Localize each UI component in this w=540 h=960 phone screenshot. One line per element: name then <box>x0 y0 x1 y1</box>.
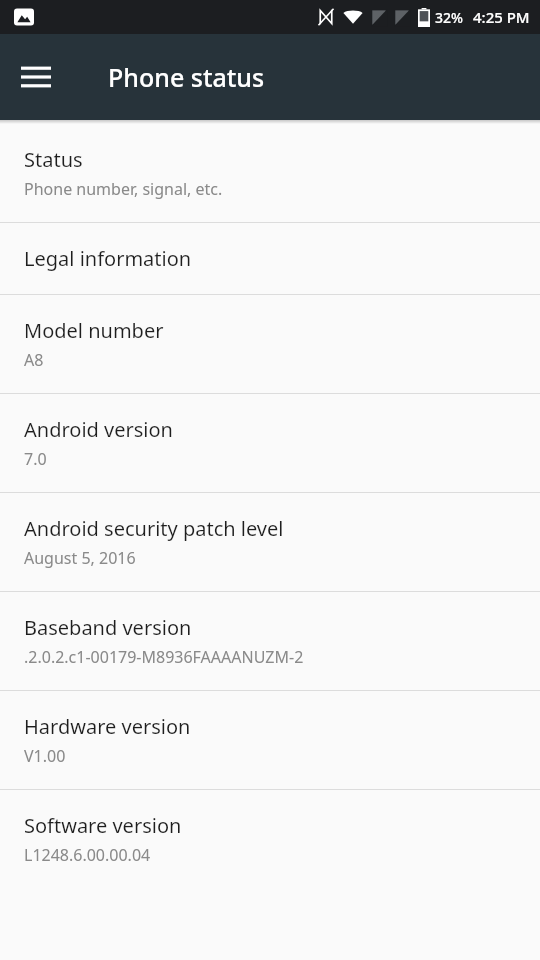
button[interactable]: Android security patch level <box>0 493 540 592</box>
button[interactable]: Model number <box>0 295 540 394</box>
staticText: Hardware version <box>24 713 191 740</box>
staticText: V1.00 <box>24 745 66 767</box>
button[interactable]: Legal information <box>0 223 540 295</box>
staticText: L1248.6.00.00.04 <box>24 844 151 866</box>
button[interactable]: Software version <box>0 790 540 888</box>
staticText: 7.0 <box>24 448 47 470</box>
staticText: Model number <box>24 317 164 344</box>
staticText: August 5, 2016 <box>24 547 136 569</box>
staticText: Android security patch level <box>24 515 284 542</box>
staticText: Legal information <box>24 245 192 272</box>
button[interactable]: Android version <box>0 394 540 493</box>
staticText: A8 <box>24 349 44 371</box>
button[interactable]: Open navigation menu <box>10 51 62 103</box>
button[interactable]: Status <box>0 124 540 223</box>
staticText: 32% <box>435 8 463 27</box>
staticText: Status <box>24 146 83 173</box>
staticText: Software version <box>24 812 182 839</box>
staticText: Android version <box>24 416 173 443</box>
staticText: Phone status <box>108 60 265 94</box>
button[interactable]: Hardware version <box>0 691 540 790</box>
button[interactable]: Baseband version <box>0 592 540 691</box>
staticText: Baseband version <box>24 614 192 641</box>
staticText: .2.0.2.c1-00179-M8936FAAAANUZM-2 <box>24 646 304 668</box>
staticText: 4:25 PM <box>473 7 530 27</box>
staticText: Phone number, signal, etc. <box>24 178 223 200</box>
